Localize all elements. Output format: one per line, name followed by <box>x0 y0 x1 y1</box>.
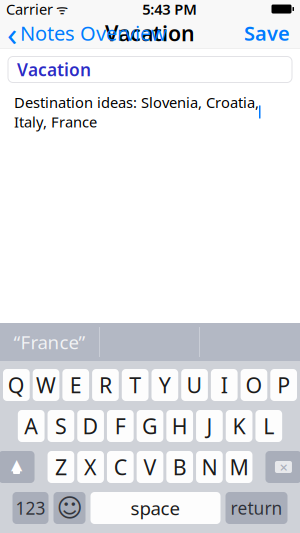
button[interactable]: L <box>255 410 282 442</box>
button[interactable]: F <box>107 410 134 442</box>
staticText: return <box>230 496 282 519</box>
button[interactable]: “France” <box>0 323 99 361</box>
staticText: P <box>277 371 290 399</box>
staticText: Z <box>55 453 67 481</box>
staticText: T <box>129 371 141 399</box>
button[interactable]: Delete <box>265 451 300 483</box>
staticText: Notes Overview <box>20 20 167 46</box>
staticText: I <box>221 371 228 399</box>
button[interactable]: Q <box>3 369 30 401</box>
button[interactable]: space <box>90 492 220 524</box>
button[interactable]: P <box>270 369 297 401</box>
button[interactable]: C <box>107 451 134 483</box>
staticText: ᯤ <box>53 0 68 18</box>
button[interactable]: Z <box>48 451 74 483</box>
button[interactable]: A <box>18 410 45 442</box>
button[interactable]: 123 <box>12 492 48 524</box>
button[interactable]: J <box>196 410 223 442</box>
button[interactable]: M <box>226 451 252 483</box>
staticText: W <box>36 371 56 399</box>
staticText: × <box>279 457 287 477</box>
staticText: Vacation <box>105 19 195 47</box>
button[interactable]: Emoji <box>53 492 85 524</box>
staticText: “France” <box>13 330 85 354</box>
staticText: N <box>201 453 217 481</box>
staticText: D <box>83 412 99 440</box>
staticText: Destination ideas: Slovenia, Croatia, It… <box>14 92 259 131</box>
staticText: A <box>24 412 38 440</box>
staticText: Y <box>159 371 171 399</box>
staticText: F <box>115 412 126 440</box>
button[interactable]: W <box>33 369 59 401</box>
button[interactable]: N <box>196 451 223 483</box>
button[interactable]: B <box>166 451 193 483</box>
button[interactable]: S <box>48 410 74 442</box>
staticText: R <box>99 371 112 399</box>
staticText: L <box>263 412 274 440</box>
staticText: U <box>187 371 203 399</box>
staticText: Vacation <box>17 58 91 81</box>
button[interactable]: ‹ <box>0 18 174 48</box>
staticText: G <box>142 412 158 440</box>
staticText: ☺ <box>56 494 82 522</box>
staticText: Q <box>8 371 25 399</box>
staticText: 5:43 PM <box>142 0 197 19</box>
staticText: M <box>230 453 249 481</box>
staticText: ‹ <box>7 11 17 55</box>
button[interactable]: K <box>226 410 252 442</box>
staticText: S <box>55 412 67 440</box>
staticText: C <box>114 453 127 481</box>
button[interactable]: V <box>137 451 163 483</box>
staticText: B <box>173 453 187 481</box>
staticText: O <box>245 371 262 399</box>
button[interactable]: Y <box>151 369 178 401</box>
button[interactable]: G <box>137 410 163 442</box>
button[interactable]: Shift <box>0 451 35 483</box>
button[interactable]: R <box>92 369 119 401</box>
staticText: Save <box>244 20 290 46</box>
button[interactable]: D <box>77 410 104 442</box>
button[interactable]: return <box>225 492 287 524</box>
button[interactable]: X <box>77 451 104 483</box>
staticText: E <box>70 371 82 399</box>
staticText: H <box>172 412 188 440</box>
button[interactable]: Save <box>234 18 300 48</box>
button[interactable]: E <box>62 369 89 401</box>
staticText: Carrier <box>6 0 53 19</box>
button[interactable]: T <box>122 369 148 401</box>
staticText: X <box>84 453 97 481</box>
staticText: V <box>143 453 156 481</box>
staticText: K <box>233 412 246 440</box>
button[interactable]: O <box>241 369 267 401</box>
staticText: J <box>206 412 212 440</box>
button[interactable]: H <box>166 410 193 442</box>
button[interactable]: U <box>181 369 208 401</box>
staticText: ▲ <box>11 456 22 473</box>
button[interactable]: I <box>211 369 238 401</box>
staticText: space <box>130 496 180 520</box>
staticText: 123 <box>15 496 45 519</box>
